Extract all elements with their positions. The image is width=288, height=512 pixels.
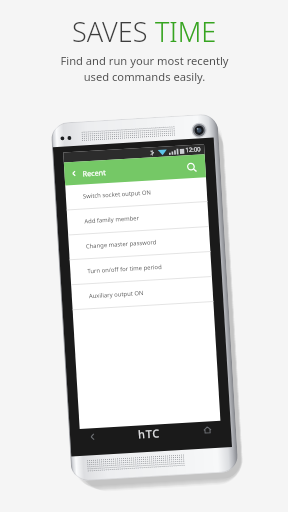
- button[interactable]: Auxiliary output ON: [71, 277, 213, 310]
- staticText: 12:00: [185, 145, 201, 154]
- staticText: Switch socket output ON: [83, 188, 152, 200]
- button[interactable]: Home: [198, 421, 215, 438]
- staticText: Turn on/off for time period: [87, 263, 162, 275]
- staticText: SAVES: [72, 13, 155, 50]
- button[interactable]: Change master password: [68, 227, 210, 260]
- staticText: Change master password: [86, 238, 157, 250]
- staticText: Auxiliary output ON: [89, 289, 144, 300]
- button[interactable]: Back: [84, 428, 101, 445]
- button[interactable]: Turn on/off for time period: [70, 252, 212, 285]
- button[interactable]: Search: [182, 157, 201, 176]
- button[interactable]: Add family member: [67, 202, 209, 235]
- staticText: hTC: [138, 425, 160, 442]
- staticText: Recent: [82, 167, 107, 178]
- staticText: Find and run your most recently used com…: [60, 53, 229, 84]
- staticText: TIME: [155, 13, 217, 50]
- button[interactable]: Switch socket output ON: [65, 177, 207, 210]
- staticText: Add family member: [84, 214, 139, 225]
